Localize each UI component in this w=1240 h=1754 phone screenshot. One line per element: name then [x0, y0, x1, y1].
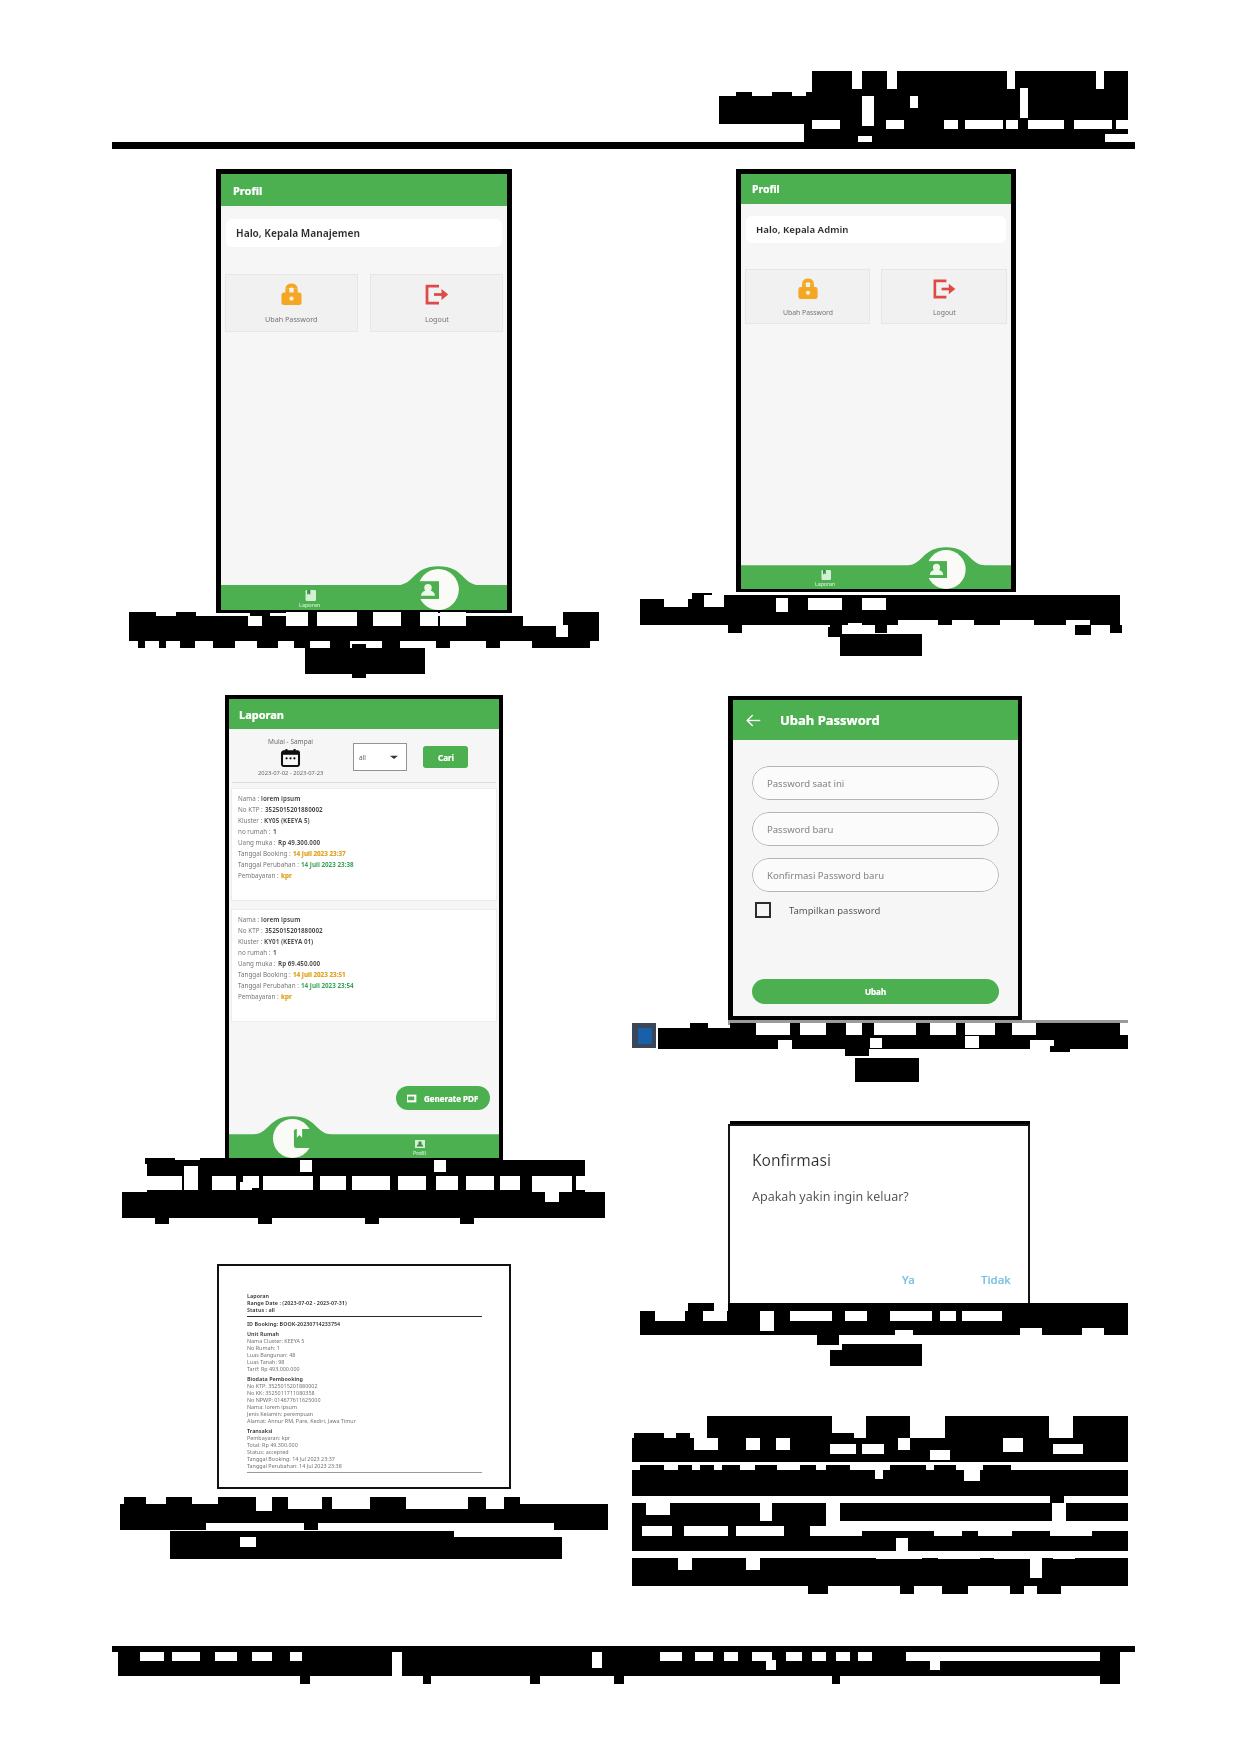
button[interactable]: Logout: [370, 274, 503, 332]
staticText: Laporan: [299, 601, 321, 608]
staticText: Tanggal Perubahan: 14 Jul 2023 23:38: [247, 1462, 342, 1469]
staticText: Rp 69.450.000: [278, 959, 321, 968]
staticText: Rp 49.300.000: [278, 838, 321, 847]
staticText: Tanggal Booking :: [238, 849, 293, 858]
staticText: Tampilkan password: [789, 904, 881, 917]
button[interactable]: Logout: [881, 269, 1007, 324]
staticText: Halo, Kepala Admin: [756, 223, 849, 236]
staticText: Uang muka :: [238, 959, 278, 968]
staticText: No KTP :: [238, 805, 265, 814]
staticText: Profil: [233, 183, 263, 198]
staticText: 3525015201880002: [265, 926, 323, 935]
staticText: Password baru: [767, 823, 834, 836]
staticText: Tanggal Perubahan :: [238, 981, 301, 990]
staticText: Mulai - Sampai: [268, 737, 313, 746]
staticText: Nama :: [238, 915, 261, 924]
staticText: kpr: [281, 992, 292, 1001]
staticText: Tidak: [981, 1272, 1011, 1288]
staticText: Range Date : (2023-07-02 - 2023-07-31): [247, 1299, 347, 1306]
staticText: Ubah Password: [265, 314, 318, 324]
staticText: No KTP: 3525015201880002: [247, 1382, 318, 1389]
staticText: 14 Juli 2023 23:37: [293, 849, 346, 858]
staticText: Pembayaran :: [238, 871, 281, 880]
button[interactable]: Laporan: [283, 1119, 322, 1158]
staticText: Apakah yakin ingin keluar?: [752, 1188, 909, 1205]
button[interactable]: Cari: [423, 746, 468, 768]
button[interactable]: Ubah Password: [745, 269, 870, 324]
staticText: Ubah Password: [780, 711, 880, 729]
staticText: 14 Juli 2023 23:54: [301, 981, 354, 990]
button[interactable]: Konfirmasi Password baru: [752, 858, 999, 892]
button[interactable]: Mulai - Sampai: [231, 737, 350, 777]
button[interactable]: Password saat ini: [752, 766, 999, 800]
staticText: Nama Cluster: KEEYA 5: [247, 1337, 305, 1344]
staticText: Cari: [438, 752, 454, 763]
staticText: Jenis Kelamin: perempuan: [247, 1410, 314, 1417]
staticText: no rumah :: [238, 948, 273, 957]
staticText: no rumah :: [238, 827, 273, 836]
button[interactable]: Halo, Kepala Manajemen: [226, 219, 502, 247]
staticText: Halo, Kepala Manajemen: [236, 226, 360, 240]
staticText: No Rumah: 1: [247, 1344, 280, 1351]
button[interactable]: Laporan: [229, 699, 499, 729]
staticText: Transaksi: [247, 1427, 273, 1434]
staticText: Kluster :: [238, 937, 264, 946]
staticText: Alamat: Annur RM, Pare, Kediri, Jawa Tim…: [247, 1417, 356, 1424]
staticText: No KK: 3525011711080358: [247, 1389, 315, 1396]
staticText: Ubah Password: [783, 308, 833, 317]
staticText: kpr: [281, 871, 292, 880]
staticText: 14 Juli 2023 23:51: [293, 970, 346, 979]
staticText: Ubah: [865, 986, 887, 997]
staticText: Password saat ini: [767, 777, 845, 790]
staticText: Uang muka :: [238, 838, 278, 847]
staticText: 2023-07-02 - 2023-07-23: [258, 769, 324, 777]
staticText: Profil: [752, 182, 780, 196]
button[interactable]: Profil: [221, 174, 507, 206]
staticText: lorem ipsum: [261, 915, 301, 924]
staticText: KY05 (KEEYA 5): [264, 816, 310, 825]
staticText: lorem ipsum: [261, 794, 301, 803]
staticText: Nama: lorem ipsum: [247, 1403, 297, 1410]
button[interactable]: Password baru: [752, 812, 999, 846]
button[interactable]: Profil: [392, 1135, 447, 1158]
button[interactable]: Halo, Kepala Admin: [746, 216, 1006, 243]
staticText: Tanggal Perubahan :: [238, 860, 301, 869]
staticText: Tanggal Booking: 14 Jul 2023 23:37: [247, 1455, 335, 1462]
button[interactable]: Profil: [407, 569, 448, 610]
button[interactable]: Profil: [741, 174, 1011, 204]
button[interactable]: Back: [733, 700, 1018, 740]
staticText: Kluster :: [238, 816, 264, 825]
staticText: Tarif: Rp 493.000.000: [247, 1365, 300, 1372]
staticText: Status: accepted: [247, 1448, 289, 1455]
button[interactable]: Ya: [897, 1272, 920, 1288]
staticText: Biodata Pembooking: [247, 1375, 304, 1382]
staticText: Laporan: [815, 580, 836, 587]
button[interactable]: all: [353, 743, 407, 771]
staticText: Konfirmasi: [752, 1149, 831, 1170]
staticText: Total: Rp 49.300.000: [247, 1441, 298, 1448]
button[interactable]: Tampilkan password: [755, 902, 881, 918]
staticText: Konfirmasi Password baru: [767, 869, 885, 882]
staticText: Luas Bangunan: 48: [247, 1351, 296, 1358]
staticText: 1: [273, 948, 277, 957]
button[interactable]: Tidak: [976, 1272, 1016, 1288]
staticText: Profil: [413, 1149, 426, 1156]
staticText: Unit Rumah: [247, 1330, 279, 1337]
staticText: all: [359, 753, 367, 762]
staticText: Laporan: [239, 707, 285, 722]
staticText: Nama :: [238, 794, 261, 803]
button[interactable]: Ubah Password: [225, 274, 358, 332]
button[interactable]: Profil: [917, 550, 956, 589]
button[interactable]: Back: [745, 712, 761, 728]
button[interactable]: Generate PDF: [396, 1086, 490, 1110]
staticText: Generate PDF: [424, 1093, 479, 1104]
button[interactable]: Laporan: [281, 586, 339, 610]
staticText: Pembayaran :: [238, 992, 281, 1001]
button[interactable]: Nama :: [231, 909, 497, 1022]
button[interactable]: Ubah: [752, 979, 999, 1004]
button[interactable]: Nama :: [231, 788, 497, 901]
button[interactable]: Laporan: [798, 566, 853, 589]
staticText: No KTP :: [238, 926, 265, 935]
staticText: Luas Tanah: 98: [247, 1358, 285, 1365]
staticText: KY01 (KEEYA 01): [264, 937, 314, 946]
